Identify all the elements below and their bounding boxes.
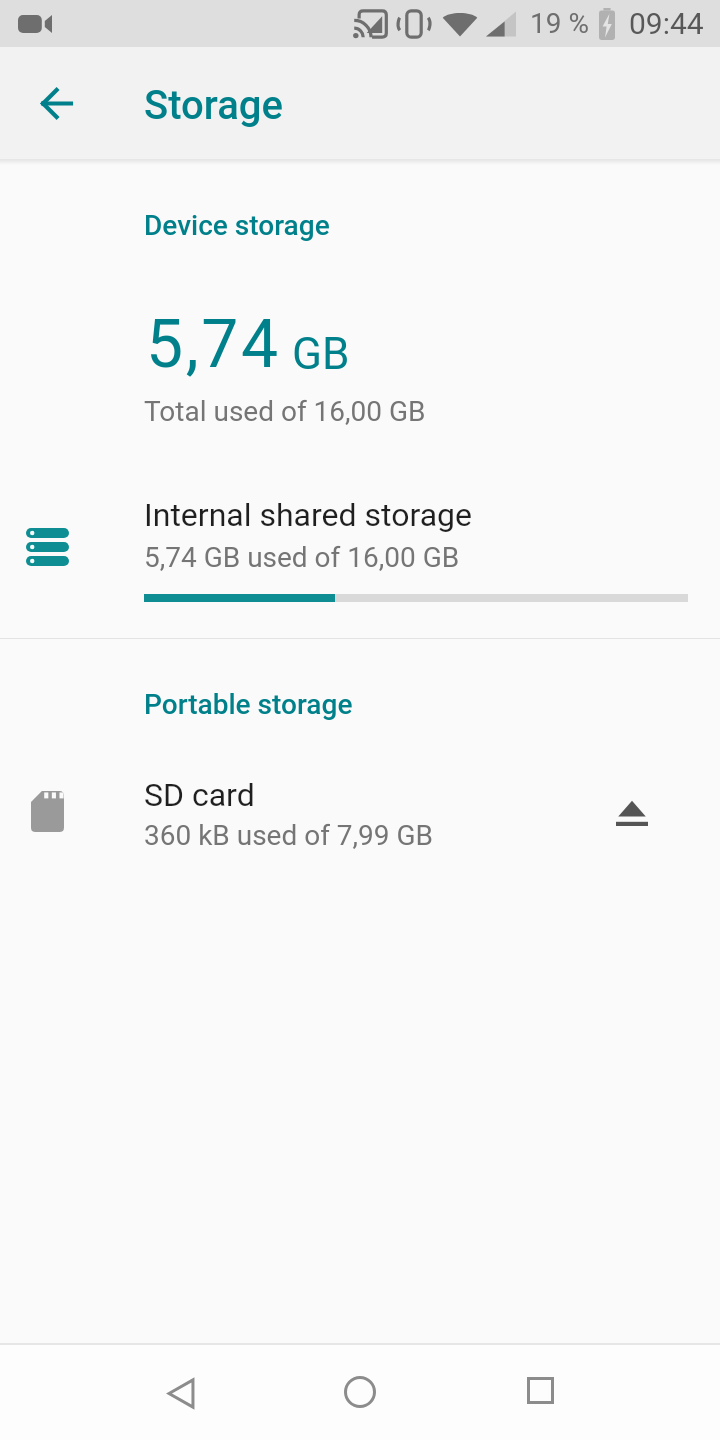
staticText: 5,74 GB used of 16,00 GB [144, 541, 460, 574]
staticText: Device storage [144, 209, 330, 242]
button[interactable]: Internal shared storage [0, 480, 720, 620]
staticText: Storage [144, 82, 283, 129]
button[interactable]: Navigate up [0, 47, 112, 159]
staticText: 19 % [530, 7, 589, 40]
button[interactable]: SD card [0, 766, 720, 862]
staticText: GB [292, 328, 350, 380]
button[interactable]: Eject SD card [584, 766, 680, 862]
staticText: Portable storage [144, 688, 353, 721]
staticText: 360 kB used of 7,99 GB [144, 819, 434, 852]
staticText: 09:44 [629, 6, 704, 41]
button[interactable]: Recent apps [492, 1345, 588, 1440]
button[interactable]: Home [312, 1345, 408, 1440]
button[interactable]: Back [133, 1345, 229, 1440]
staticText: SD card [144, 776, 255, 814]
staticText: Total used of 16,00 GB [144, 395, 426, 428]
staticText: 5,74 [146, 306, 281, 383]
staticText: Internal shared storage [144, 496, 472, 534]
